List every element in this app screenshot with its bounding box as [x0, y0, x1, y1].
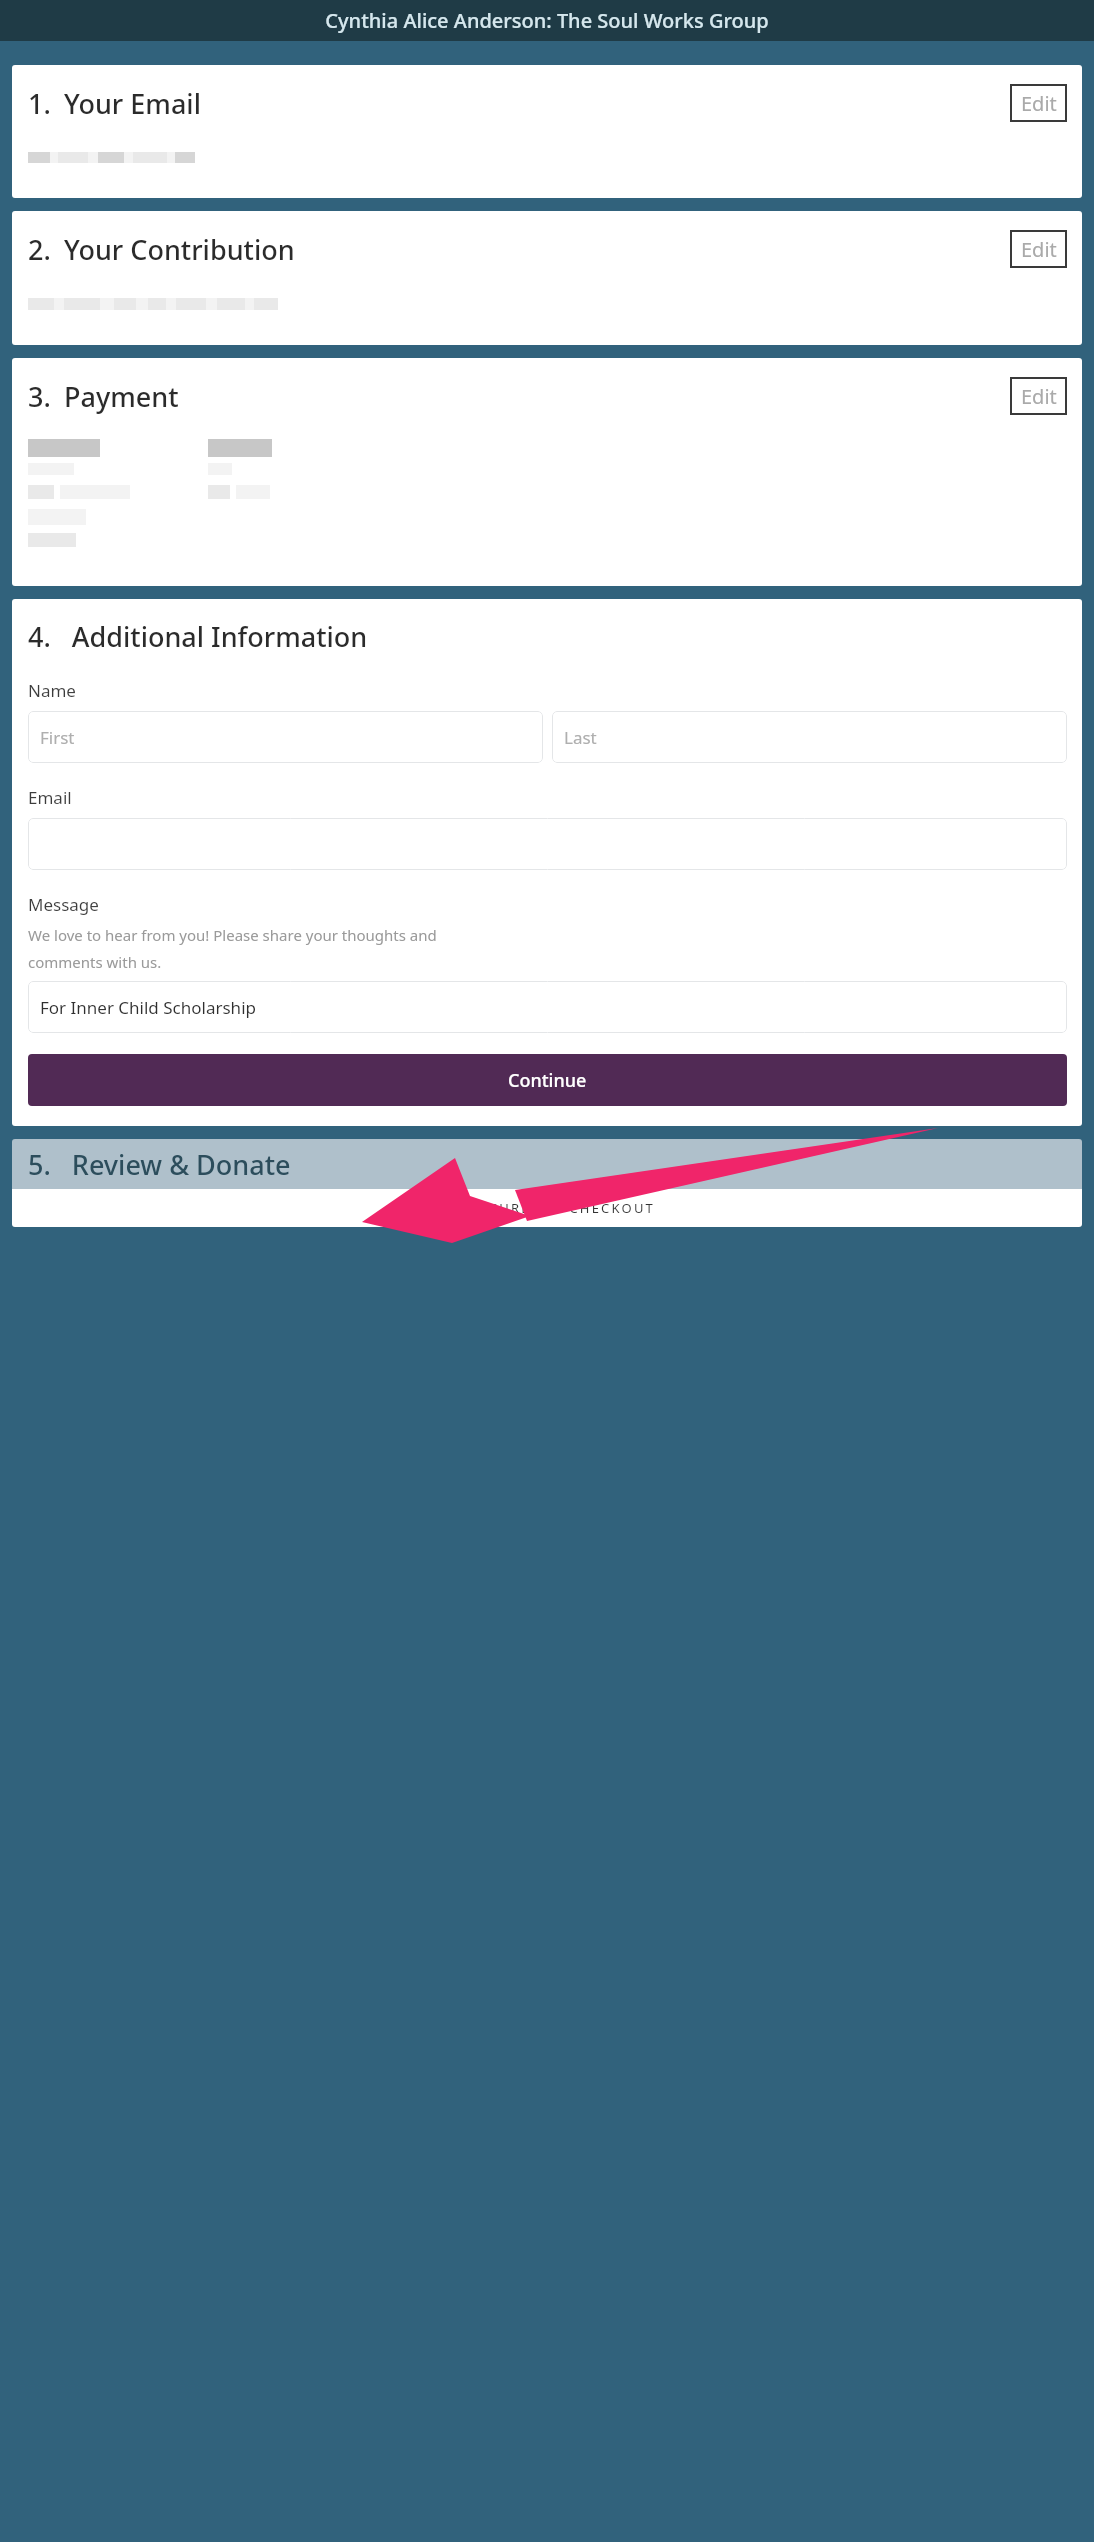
staticText: Payment — [64, 378, 179, 415]
staticText: SECURE SSL CHECKOUT — [470, 1199, 656, 1217]
button[interactable]: 5. Review & Donate — [12, 1139, 1082, 1189]
button[interactable]: For Inner Child Scholarship — [28, 981, 1067, 1033]
staticText: Edit — [1021, 236, 1057, 263]
staticText: Edit — [1021, 90, 1057, 117]
staticText: Last — [564, 726, 597, 749]
staticText: 1. — [28, 85, 51, 122]
staticText: We love to hear from you! Please share y… — [28, 925, 437, 945]
button[interactable]: Edit — [1010, 377, 1067, 415]
button[interactable]: Last — [552, 711, 1067, 763]
button[interactable]: 4. Additional Information — [12, 599, 1082, 1126]
staticText: 5. Review & Donate — [28, 1146, 291, 1183]
button[interactable]: Edit — [1010, 230, 1067, 268]
button[interactable]: 1. — [12, 65, 1082, 198]
staticText: Cynthia Alice Anderson: The Soul Works G… — [325, 7, 769, 34]
staticText: comments with us. — [28, 952, 162, 972]
button[interactable]: 3. — [12, 358, 1082, 586]
staticText: Email — [28, 786, 72, 809]
staticText: 4. Additional Information — [28, 618, 368, 655]
staticText: Continue — [508, 1068, 587, 1093]
staticText: Your Contribution — [64, 231, 295, 268]
staticText: For Inner Child Scholarship — [40, 996, 256, 1019]
staticText: Message — [28, 893, 99, 916]
staticText: First — [40, 726, 75, 749]
button[interactable]: Continue — [28, 1054, 1067, 1106]
staticText: Name — [28, 679, 76, 702]
button[interactable]: First — [28, 711, 543, 763]
button[interactable]: 2. — [12, 211, 1082, 345]
button[interactable] — [28, 818, 1067, 870]
staticText: 3. — [28, 378, 51, 415]
staticText: Your Email — [64, 85, 201, 122]
staticText: 2. — [28, 231, 51, 268]
staticText: Edit — [1021, 383, 1057, 410]
button[interactable]: Edit — [1010, 84, 1067, 122]
